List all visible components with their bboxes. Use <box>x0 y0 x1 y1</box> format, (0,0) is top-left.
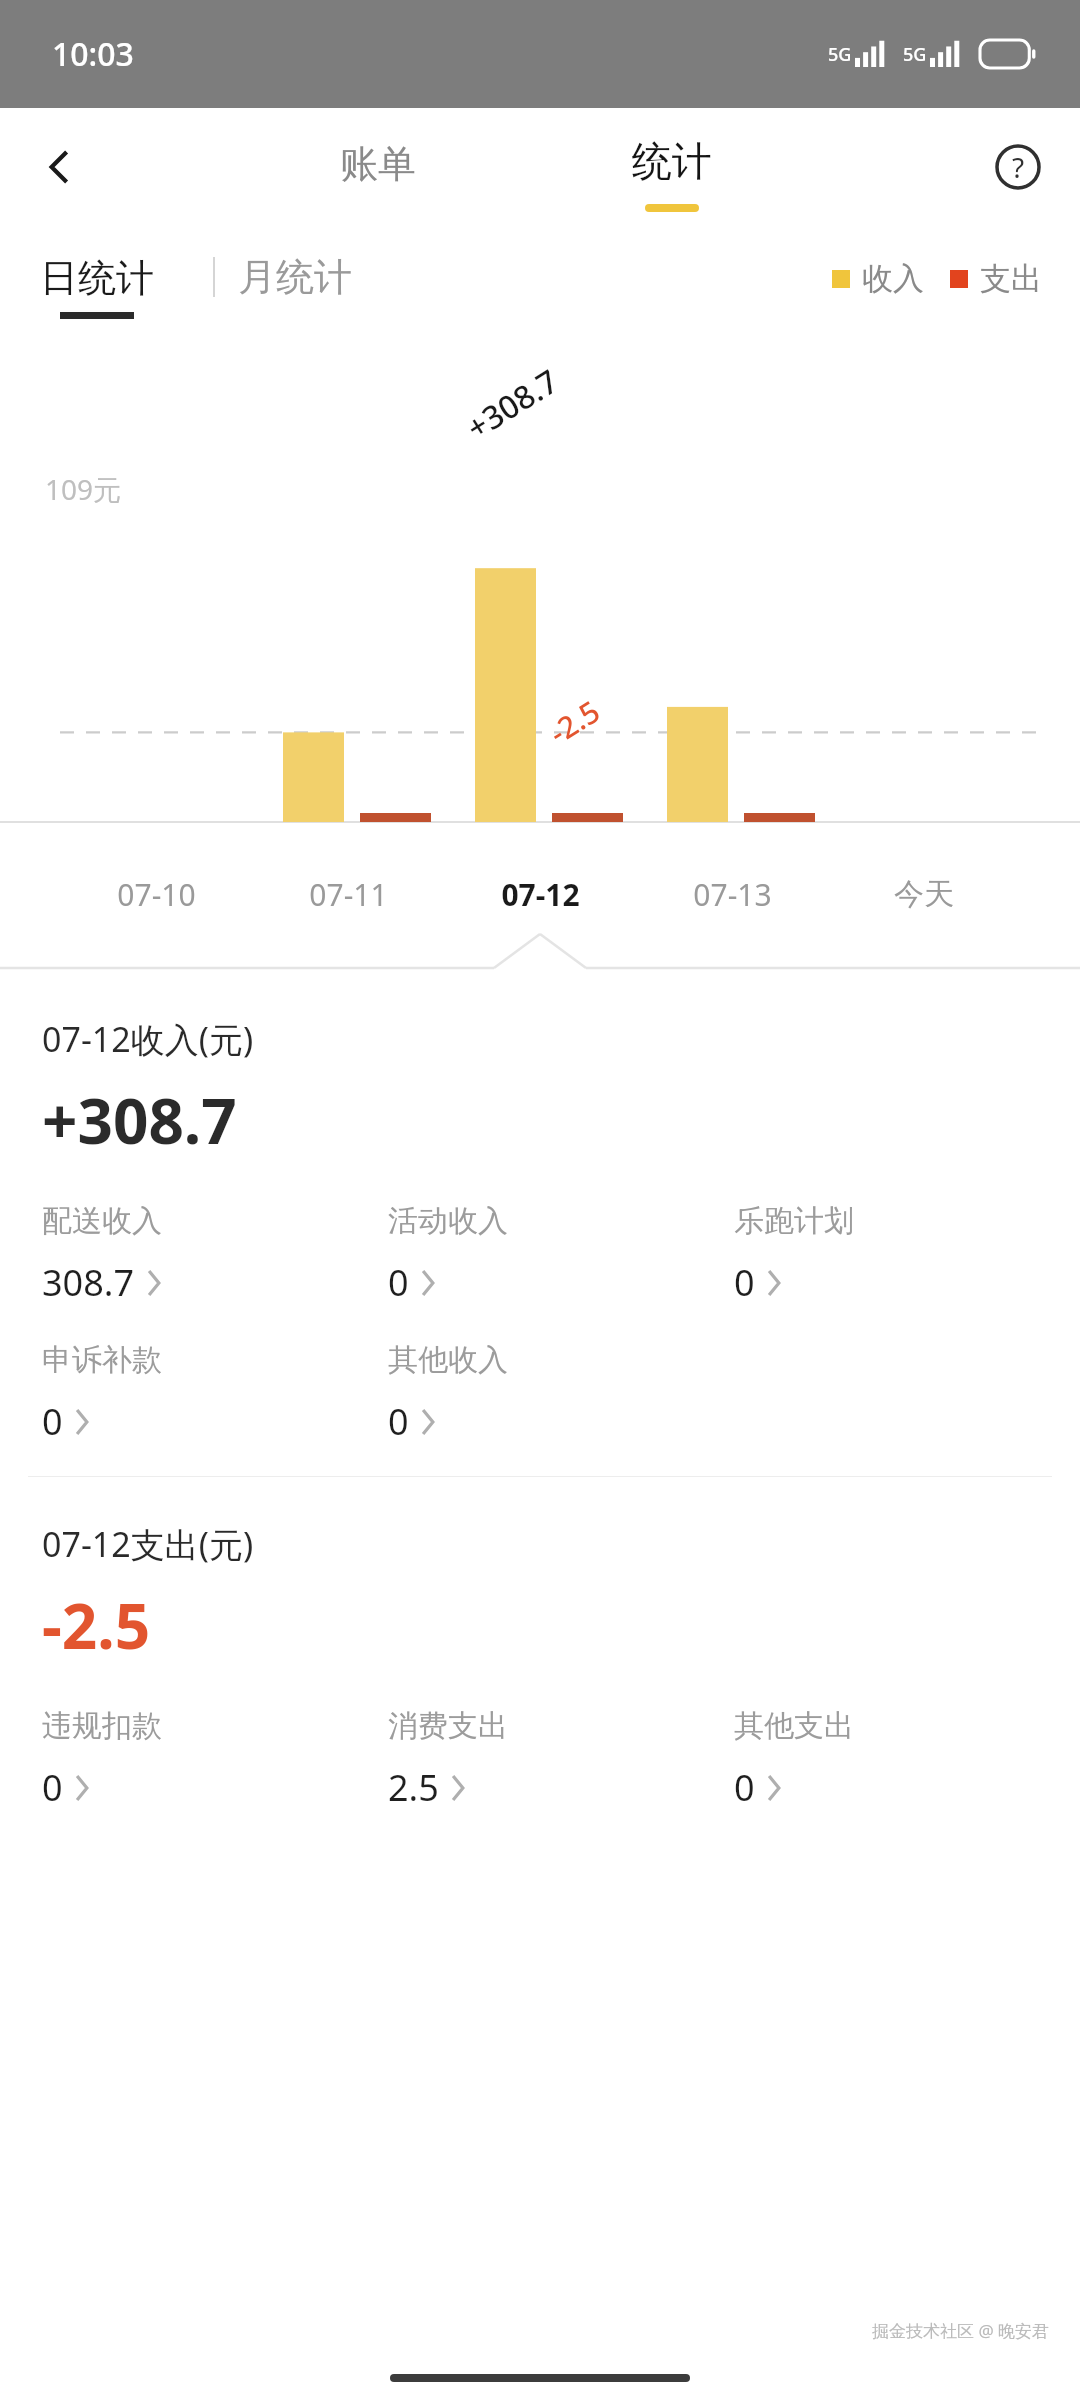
button[interactable]: Help <box>982 131 1054 203</box>
button[interactable]: 申诉补款 <box>42 1341 170 1446</box>
button[interactable]: 其他支出 <box>734 1707 862 1812</box>
staticText: 配送收入 <box>42 1202 162 1240</box>
staticText: 掘金技术社区 @ 晚安君 <box>872 2319 1050 2342</box>
staticText: 0 <box>388 1258 409 1307</box>
button[interactable]: 07-10 <box>60 856 252 932</box>
button[interactable]: 账单 <box>330 134 426 194</box>
button[interactable]: 07-12 <box>444 856 636 932</box>
staticText: -2.5 <box>42 1583 151 1667</box>
button[interactable]: 日统计 <box>40 254 154 319</box>
staticText: 5G <box>828 42 852 67</box>
button[interactable]: 07-13 <box>636 856 828 932</box>
staticText: 0 <box>734 1258 755 1307</box>
button[interactable]: 今天 <box>828 856 1020 932</box>
staticText: 支出 <box>980 259 1042 298</box>
staticText: 109元 <box>45 470 122 508</box>
staticText: 其他收入 <box>388 1341 508 1379</box>
staticText: 308.7 <box>42 1258 135 1307</box>
staticText: 消费支出 <box>388 1707 508 1745</box>
staticText: 2.5 <box>388 1763 439 1812</box>
staticText: ? <box>1012 148 1025 186</box>
button[interactable]: 乐跑计划 <box>734 1202 862 1307</box>
button[interactable]: 月统计 <box>238 253 352 301</box>
staticText: 07-11 <box>309 874 388 915</box>
staticText: 收入 <box>862 259 924 298</box>
staticText: -2.5 <box>541 690 608 753</box>
staticText: 违规扣款 <box>42 1707 162 1745</box>
staticText: 0 <box>388 1397 409 1446</box>
button[interactable]: 违规扣款 <box>42 1707 170 1812</box>
staticText: 0 <box>734 1763 755 1812</box>
staticText: 07-12支出(元) <box>42 1521 254 1567</box>
staticText: +308.7 <box>458 359 567 449</box>
staticText: 10:03 <box>52 32 134 76</box>
staticText: 申诉补款 <box>42 1341 162 1379</box>
button[interactable]: 活动收入 <box>388 1202 516 1307</box>
staticText: 07-10 <box>117 874 196 915</box>
staticText: 5G <box>903 42 927 67</box>
staticText: 0 <box>42 1397 63 1446</box>
staticText: 日统计 <box>40 254 154 302</box>
button[interactable]: 统计 <box>622 130 722 212</box>
staticText: 今天 <box>894 875 954 913</box>
staticText: 0 <box>42 1763 63 1812</box>
staticText: 月统计 <box>238 253 352 301</box>
staticText: 乐跑计划 <box>734 1202 854 1240</box>
staticText: 活动收入 <box>388 1202 508 1240</box>
staticText: 统计 <box>632 136 712 186</box>
staticText: 07-13 <box>693 874 772 915</box>
staticText: 07-12 <box>501 874 580 915</box>
staticText: 账单 <box>340 140 416 188</box>
button[interactable]: 其他收入 <box>388 1341 516 1446</box>
staticText: 07-12收入(元) <box>42 1016 254 1062</box>
staticText: 其他支出 <box>734 1707 854 1745</box>
button[interactable]: 07-11 <box>252 856 444 932</box>
button[interactable]: 消费支出 <box>388 1707 516 1812</box>
button[interactable]: 配送收入 <box>42 1202 170 1307</box>
staticText: +308.7 <box>42 1078 237 1162</box>
button[interactable]: Back <box>24 131 96 203</box>
